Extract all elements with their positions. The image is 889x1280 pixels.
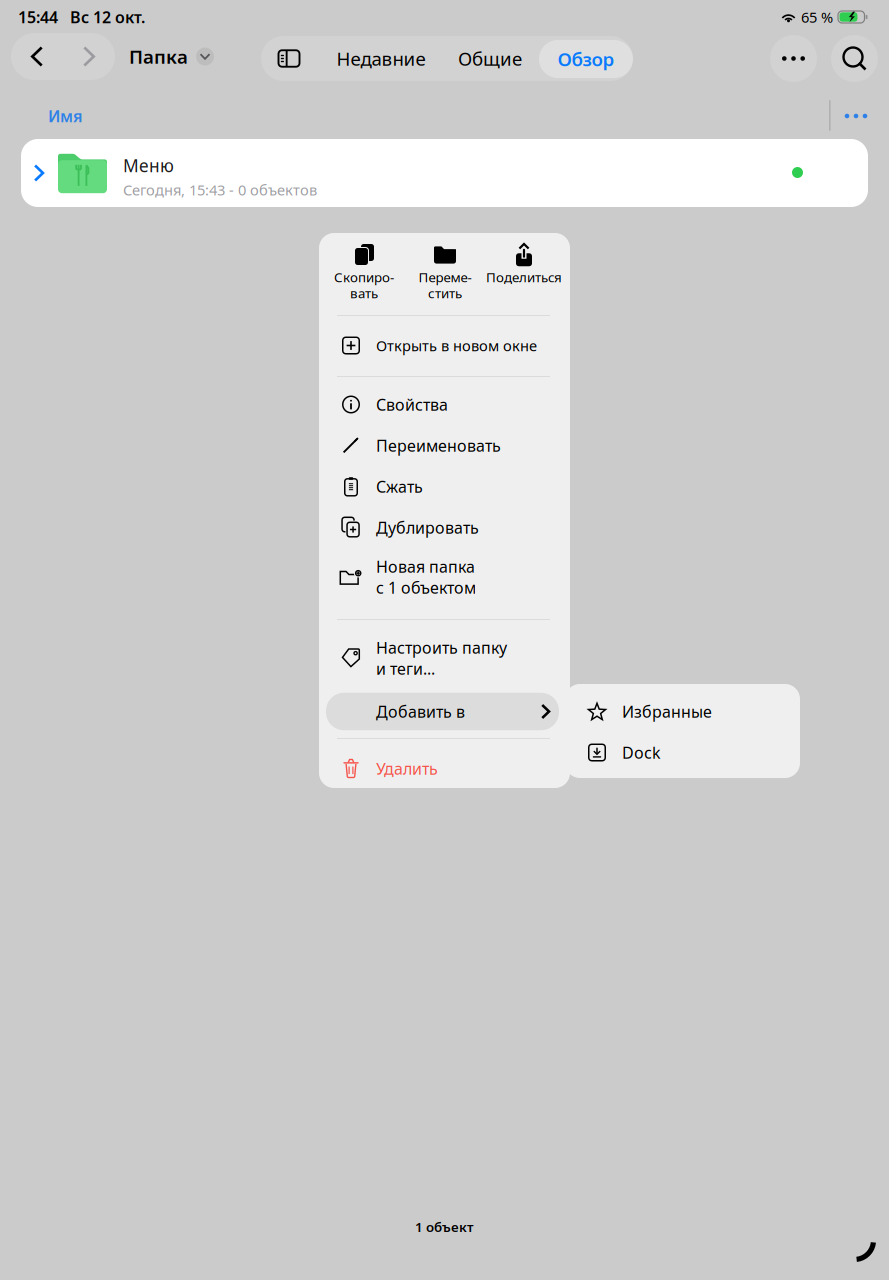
button[interactable]: Имя (48, 102, 83, 130)
button[interactable]: Папка (129, 33, 214, 80)
button[interactable]: More (770, 35, 817, 82)
staticText: стить (428, 284, 462, 302)
button[interactable]: Настроить папку (319, 627, 570, 689)
button[interactable]: Sidebar (266, 36, 312, 81)
staticText: вать (350, 284, 378, 302)
button[interactable]: Dock (565, 732, 800, 773)
staticText: Dock (622, 742, 661, 763)
staticText: Переименовать (376, 435, 501, 456)
staticText: Меню (123, 154, 174, 177)
staticText: Сегодня, 15:43 - 0 объектов (123, 180, 317, 199)
staticText: Вс 12 окт. (70, 6, 145, 28)
button[interactable]: Новая папка (319, 546, 570, 608)
button[interactable]: Переименовать (319, 425, 570, 466)
staticText: Общие (458, 46, 522, 71)
button[interactable]: Скопиро- (324, 233, 404, 315)
button[interactable]: Поделиться (484, 233, 564, 315)
staticText: Сжать (376, 476, 423, 497)
staticText: Настроить папку (376, 637, 507, 658)
button[interactable]: Свойства (319, 384, 570, 425)
button[interactable]: Forward (63, 33, 115, 80)
button[interactable]: Дублировать (319, 507, 570, 548)
button[interactable]: Недавние (325, 36, 437, 81)
staticText: Новая папка (376, 556, 475, 577)
staticText: Имя (48, 105, 83, 127)
staticText: Избранные (622, 701, 712, 722)
staticText: и теги... (376, 658, 435, 679)
staticText: 1 объект (415, 1218, 474, 1236)
button[interactable]: Back (11, 33, 63, 80)
button[interactable]: Search (831, 35, 878, 82)
button[interactable]: Открыть в новом окне (319, 325, 570, 366)
button[interactable]: Меню (21, 139, 868, 207)
staticText: 15:44 (18, 6, 58, 28)
button[interactable]: Column options (834, 101, 878, 131)
staticText: Открыть в новом окне (376, 336, 537, 355)
button[interactable]: Сжать (319, 466, 570, 507)
staticText: Недавние (336, 46, 425, 71)
staticText: Папка (129, 44, 188, 69)
staticText: Поделиться (486, 268, 562, 286)
staticText: Обзор (557, 47, 614, 71)
staticText: Свойства (376, 394, 448, 415)
staticText: Добавить в (376, 701, 465, 722)
staticText: Переме- (418, 268, 471, 286)
staticText: 65 % (801, 7, 833, 27)
button[interactable]: Избранные (565, 691, 800, 732)
staticText: Дублировать (376, 517, 479, 538)
button[interactable]: Удалить (319, 748, 570, 789)
button[interactable]: Общие (448, 36, 532, 81)
staticText: Скопиро- (334, 268, 394, 286)
staticText: Удалить (376, 758, 438, 779)
button[interactable]: Обзор (539, 40, 633, 78)
button[interactable]: Переме- (405, 233, 485, 315)
button[interactable]: Добавить в (319, 691, 570, 732)
staticText: с 1 объектом (376, 577, 476, 598)
